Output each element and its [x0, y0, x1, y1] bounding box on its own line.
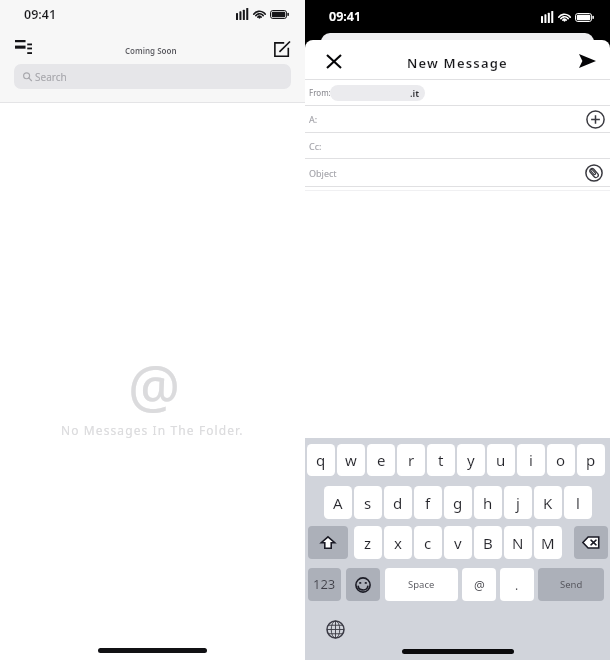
button[interactable]: z [354, 526, 382, 559]
staticText: d [393, 493, 403, 513]
staticText: h [483, 493, 493, 513]
staticText: N [512, 533, 524, 553]
button[interactable]: B [474, 526, 502, 559]
staticText: i [529, 450, 533, 470]
staticText: .it [410, 87, 420, 99]
staticText: B [483, 533, 493, 553]
staticText: @ [474, 577, 485, 593]
staticText: Send [560, 578, 583, 591]
button[interactable]: l [564, 486, 592, 519]
staticText: No Messages In The Folder. [61, 422, 244, 438]
staticText: 09:41 [329, 8, 362, 25]
button[interactable]: Send message [538, 568, 604, 601]
staticText: o [556, 450, 566, 470]
button[interactable]: N [504, 526, 532, 559]
staticText: s [364, 493, 372, 513]
button[interactable]: Object [305, 159, 610, 186]
button[interactable]: v [444, 526, 472, 559]
button[interactable]: t [427, 444, 455, 476]
button[interactable]: f [414, 486, 442, 519]
button[interactable]: Emoji [346, 568, 380, 601]
button[interactable]: g [444, 486, 472, 519]
staticText: . [515, 577, 519, 593]
button[interactable]: s [354, 486, 382, 519]
staticText: A: [309, 113, 318, 125]
button[interactable]: M [534, 526, 562, 559]
staticText: 09:41 [24, 6, 57, 23]
button[interactable]: A: [305, 106, 610, 132]
staticText: t [438, 450, 444, 470]
button[interactable]: Space [385, 568, 458, 601]
staticText: A [333, 493, 343, 513]
button[interactable]: At sign [462, 568, 496, 601]
button[interactable]: Period [500, 568, 534, 601]
button[interactable]: From: [305, 80, 610, 105]
button[interactable]: Close [323, 50, 345, 72]
staticText: q [316, 450, 326, 470]
staticText: x [394, 533, 402, 553]
button[interactable]: Change keyboard language [324, 618, 346, 640]
staticText: @ [128, 346, 181, 425]
staticText: Space [408, 578, 435, 591]
staticText: e [377, 450, 386, 470]
staticText: j [516, 493, 520, 513]
staticText: l [576, 493, 580, 513]
button[interactable]: Attach file [584, 163, 604, 183]
button[interactable]: o [547, 444, 575, 476]
staticText: Object [309, 167, 337, 179]
button[interactable]: d [384, 486, 412, 519]
staticText: y [467, 450, 475, 470]
staticText: p [586, 450, 596, 470]
staticText: c [424, 533, 432, 553]
button[interactable]: c [414, 526, 442, 559]
staticText: u [496, 450, 506, 470]
button[interactable]: x [384, 526, 412, 559]
button[interactable]: K [534, 486, 562, 519]
staticText: Search [35, 70, 67, 84]
button[interactable]: Folders [11, 35, 35, 59]
staticText: 123 [313, 575, 336, 593]
staticText: r [408, 450, 415, 470]
button[interactable]: Cc: [305, 133, 610, 158]
staticText: g [453, 493, 463, 513]
button[interactable]: w [337, 444, 365, 476]
button[interactable]: q [307, 444, 335, 476]
staticText: Cc: [309, 140, 322, 152]
staticText: From: [309, 87, 331, 98]
staticText: w [345, 450, 357, 470]
staticText: v [454, 533, 462, 553]
button[interactable]: A [324, 486, 352, 519]
button[interactable]: p [577, 444, 605, 476]
button[interactable]: Backspace [574, 526, 608, 559]
staticText: M [541, 533, 555, 553]
button[interactable]: Search [14, 64, 291, 89]
button[interactable]: e [367, 444, 395, 476]
staticText: New Message [407, 54, 508, 72]
button[interactable]: Add recipient [585, 109, 605, 129]
button[interactable]: Compose new message [270, 38, 292, 60]
staticText: f [425, 493, 431, 513]
button[interactable]: y [457, 444, 485, 476]
button[interactable]: i [517, 444, 545, 476]
button[interactable]: u [487, 444, 515, 476]
staticText: K [543, 493, 553, 513]
button[interactable]: Send [576, 50, 598, 72]
button[interactable]: Numbers [308, 568, 341, 601]
staticText: z [364, 533, 372, 553]
button[interactable]: j [504, 486, 532, 519]
staticText: Coming Soon [125, 45, 177, 56]
button[interactable]: r [397, 444, 425, 476]
button[interactable]: Shift [308, 526, 348, 559]
button[interactable]: h [474, 486, 502, 519]
